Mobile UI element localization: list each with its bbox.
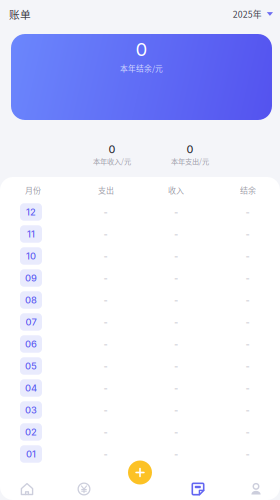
button[interactable]: 08	[0, 289, 280, 311]
staticText: 本年收入/元	[93, 156, 131, 166]
staticText: -	[174, 294, 178, 306]
staticText: -	[103, 228, 107, 240]
staticText: -	[245, 360, 249, 372]
staticText: -	[103, 272, 107, 284]
staticText: 2025年	[233, 8, 262, 20]
staticText: -	[245, 338, 249, 350]
staticText: 01	[26, 448, 36, 460]
button[interactable]: Assets	[0, 472, 280, 500]
staticText: 02	[25, 426, 37, 438]
staticText: -	[103, 250, 107, 262]
staticText: -	[174, 206, 178, 218]
button[interactable]: 03	[0, 399, 280, 421]
staticText: -	[103, 360, 107, 372]
button[interactable]: Home	[0, 472, 280, 500]
staticText: 12	[26, 206, 36, 218]
staticText: -	[174, 316, 178, 328]
staticText: 本年支出/元	[171, 156, 209, 166]
button[interactable]: 10	[0, 245, 280, 267]
staticText: -	[245, 206, 249, 218]
staticText: 06	[25, 338, 37, 350]
staticText: 0	[108, 143, 115, 156]
staticText: 0	[186, 143, 193, 156]
staticText: -	[103, 404, 107, 416]
staticText: 0	[135, 38, 147, 61]
staticText: -	[174, 448, 178, 460]
staticText: -	[245, 294, 249, 306]
staticText: 05	[25, 360, 37, 372]
button[interactable]: 07	[0, 311, 280, 333]
button[interactable]: 05	[0, 355, 280, 377]
staticText: -	[245, 272, 249, 284]
staticText: -	[174, 338, 178, 350]
staticText: 09	[25, 272, 37, 284]
staticText: 月份	[25, 184, 41, 196]
staticText: -	[103, 338, 107, 350]
staticText: 账单	[9, 6, 31, 22]
staticText: 11	[27, 228, 35, 240]
staticText: -	[174, 228, 178, 240]
staticText: -	[245, 426, 249, 438]
staticText: 08	[25, 294, 37, 306]
button[interactable]: 2025年	[225, 1, 273, 27]
staticText: -	[103, 448, 107, 460]
staticText: -	[103, 426, 107, 438]
staticText: 07	[25, 316, 36, 328]
staticText: -	[245, 228, 249, 240]
staticText: -	[103, 382, 107, 394]
staticText: 10	[26, 250, 36, 262]
staticText: -	[245, 382, 249, 394]
staticText: -	[174, 250, 178, 262]
staticText: -	[245, 448, 249, 460]
staticText: 收入	[168, 184, 184, 196]
staticText: -	[103, 206, 107, 218]
staticText: -	[245, 316, 249, 328]
button[interactable]: 04	[0, 377, 280, 399]
staticText: -	[174, 272, 178, 284]
staticText: -	[174, 360, 178, 372]
button[interactable]: Bills	[0, 472, 280, 500]
staticText: 结余	[240, 184, 256, 196]
staticText: 本年结余/元	[120, 63, 163, 74]
staticText: -	[245, 404, 249, 416]
staticText: -	[103, 294, 107, 306]
button[interactable]: 09	[0, 267, 280, 289]
button[interactable]: Profile	[0, 472, 280, 500]
button[interactable]: 02	[0, 421, 280, 443]
button[interactable]: 11	[0, 223, 280, 245]
staticText: -	[174, 426, 178, 438]
button[interactable]: 06	[0, 333, 280, 355]
staticText: -	[174, 382, 178, 394]
staticText: 支出	[98, 184, 114, 196]
staticText: 03	[25, 404, 37, 416]
button[interactable]: 01	[0, 443, 280, 465]
staticText: -	[103, 316, 107, 328]
staticText: 04	[25, 382, 37, 394]
staticText: -	[174, 404, 178, 416]
button[interactable]: 12	[0, 201, 280, 223]
button[interactable]: Add record	[124, 456, 156, 488]
staticText: -	[245, 250, 249, 262]
